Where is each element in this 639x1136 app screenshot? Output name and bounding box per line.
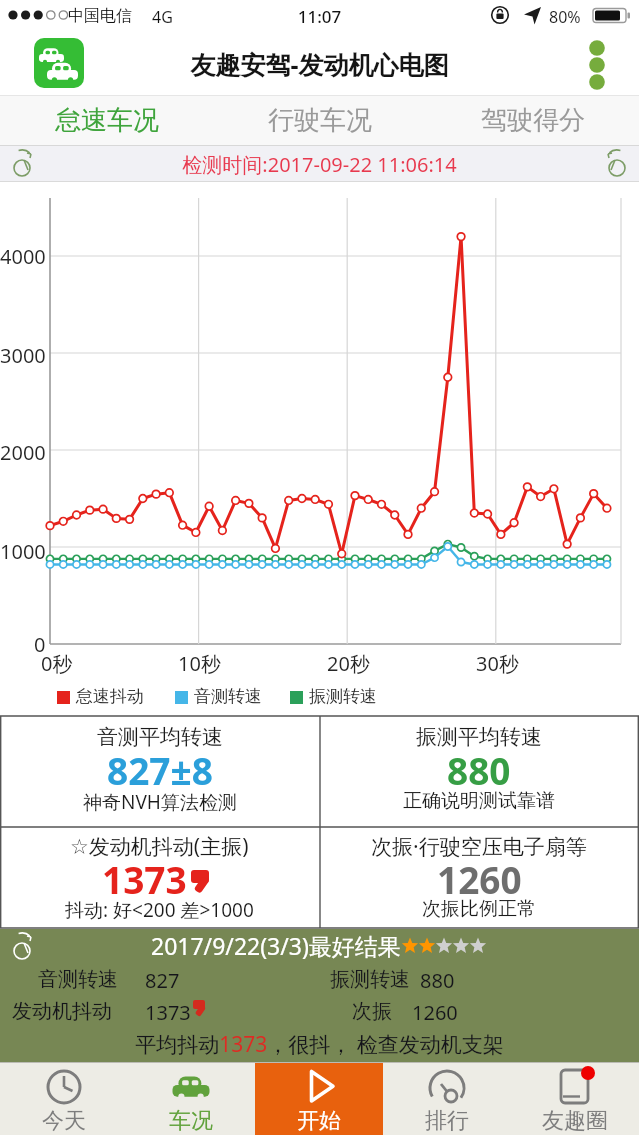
staticText: 开始 [297, 1107, 341, 1135]
button[interactable]: ☆发动机抖动(主振) [0, 827, 319, 929]
staticText: 今天 [42, 1107, 86, 1135]
staticText: 车况 [169, 1107, 213, 1135]
staticText: 音测平均转速 [97, 724, 223, 750]
staticText: 神奇NVH算法检测 [83, 789, 237, 815]
staticText: 友趣安驾-发动机心电图 [0, 47, 639, 81]
staticText: 怠速抖动 [76, 686, 144, 707]
button[interactable]: 开始 [255, 1062, 383, 1135]
staticText: 驾驶得分 [481, 104, 585, 137]
staticText: 20秒 [327, 650, 370, 677]
staticText: 11:07 [0, 5, 639, 28]
staticText: 检测时间:2017-09-22 11:06:14 [0, 151, 639, 178]
staticText: 友趣圈 [542, 1107, 608, 1135]
staticText: 1373 [145, 999, 191, 1026]
button[interactable]: 次振·行驶空压电子扇等 [319, 827, 639, 929]
staticText: 1373 [102, 854, 187, 904]
staticText: 次振·行驶空压电子扇等 [371, 832, 587, 861]
staticText: 0 [34, 631, 46, 658]
staticText: 抖动: 好<200 差>1000 [65, 897, 254, 923]
button[interactable]: 友趣圈 [511, 1062, 639, 1135]
button[interactable]: 驾驶得分 [426, 96, 639, 145]
button[interactable]: 行驶车况 [213, 96, 426, 145]
staticText: 1260 [412, 999, 458, 1026]
button[interactable] [34, 38, 86, 90]
staticText: 827 [145, 967, 180, 994]
staticText: 1000 [0, 538, 46, 565]
staticText: 2017/9/22(3/3)最好结果 [151, 930, 401, 961]
staticText: 排行 [425, 1107, 469, 1135]
staticText: 80% [549, 6, 581, 28]
staticText: 4000 [0, 243, 46, 270]
button[interactable] [6, 148, 38, 180]
staticText: 振测平均转速 [416, 724, 542, 750]
staticText: 音测转速 [194, 686, 262, 707]
button[interactable]: 排行 [383, 1062, 511, 1135]
staticText: 平均抖动1373，很抖， 检查发动机支架 [0, 1030, 639, 1059]
staticText: 怠速车况 [55, 104, 159, 137]
staticText: 振测转速 [330, 967, 410, 992]
button[interactable]: 音测平均转速 [0, 715, 319, 827]
staticText: 发动机抖动 [12, 999, 112, 1024]
staticText: 音测转速 [38, 967, 118, 992]
staticText: 振测转速 [309, 686, 377, 707]
staticText: 中国电信 [68, 6, 132, 26]
staticText: 次振 [352, 999, 392, 1024]
staticText: 正确说明测试靠谱 [403, 789, 555, 813]
button[interactable]: 振测平均转速 [319, 715, 639, 827]
staticText: 次振比例正常 [422, 897, 536, 921]
staticText: 10秒 [178, 650, 221, 677]
staticText: 3000 [0, 342, 46, 369]
staticText: 880 [447, 745, 511, 795]
staticText: 1260 [437, 854, 522, 904]
staticText: 4G [152, 6, 173, 28]
button[interactable]: 怠速车况 [0, 96, 213, 145]
staticText: 880 [420, 967, 455, 994]
button[interactable] [601, 148, 633, 180]
staticText: 0秒 [41, 650, 73, 677]
staticText: 30秒 [476, 650, 519, 677]
button[interactable] [582, 41, 612, 71]
staticText: ☆发动机抖动(主振) [70, 832, 249, 861]
staticText: 827±8 [107, 745, 213, 795]
staticText: 行驶车况 [268, 104, 372, 137]
staticText: 2000 [0, 439, 46, 466]
button[interactable]: 车况 [127, 1062, 255, 1135]
button[interactable]: 今天 [0, 1062, 127, 1135]
